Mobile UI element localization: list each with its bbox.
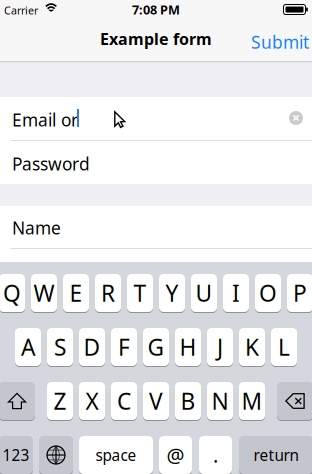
button[interactable]: B [175,382,201,421]
staticText: Password [12,152,90,176]
button[interactable]: D [79,328,105,367]
staticText: return [253,445,298,465]
staticText: K [245,332,259,362]
button[interactable]: Submit [237,27,309,57]
staticText: O [259,278,277,308]
button[interactable]: C [111,382,137,421]
button[interactable]: M [239,382,265,421]
staticText: F [118,332,130,362]
button[interactable]: Z [47,382,73,421]
button[interactable]: J [207,328,233,367]
staticText: A [21,332,35,362]
button[interactable]: H [175,328,201,367]
staticText: space [95,445,136,465]
staticText: E [69,278,82,308]
staticText: or [61,108,78,132]
button[interactable]: R [95,274,121,313]
staticText: Q [3,278,21,308]
staticText: M [241,386,262,416]
staticText: L [278,332,290,362]
button[interactable]: @ [159,436,192,474]
staticText: W [33,278,54,308]
button[interactable]: G [143,328,169,367]
staticText: Submit [251,30,309,54]
staticText: C [117,386,131,416]
button[interactable]: Clear text [289,111,303,125]
staticText: H [179,332,196,362]
button[interactable]: Y [159,274,185,313]
staticText: Name [12,216,61,240]
button[interactable]: A [15,328,41,367]
staticText: B [180,386,195,416]
button[interactable]: Q [0,274,25,313]
button[interactable]: P [287,274,312,313]
button[interactable]: X [79,382,105,421]
staticText: Z [53,386,66,416]
button[interactable]: Next keyboard [39,436,73,474]
button[interactable]: S [47,328,73,367]
button[interactable]: N [207,382,233,421]
button[interactable]: W [31,274,57,313]
staticText: Y [165,278,178,308]
staticText: Example form [100,28,212,50]
button[interactable]: 123 [0,436,33,474]
button[interactable]: Shift [0,382,35,421]
button[interactable]: Delete [277,382,312,421]
button[interactable]: V [143,382,169,421]
staticText: 123 [2,445,29,465]
button[interactable]: U [191,274,217,313]
staticText: U [195,278,212,308]
staticText: T [133,278,146,308]
button[interactable]: . [199,436,232,474]
staticText: P [293,278,307,308]
staticText: R [101,278,115,308]
button[interactable]: L [271,328,297,367]
button[interactable]: E [63,274,89,313]
staticText: 7:08 PM [132,1,180,18]
staticText: Email [12,108,56,132]
button[interactable]: O [255,274,281,313]
staticText: . [213,441,218,469]
button[interactable]: F [111,328,137,367]
staticText: N [211,386,228,416]
staticText: Carrier [4,3,38,17]
button[interactable]: return [239,436,312,474]
staticText: @ [166,441,184,469]
staticText: I [232,278,240,308]
button[interactable]: T [127,274,153,313]
button[interactable]: I [223,274,249,313]
staticText: V [149,386,163,416]
button[interactable]: K [239,328,265,367]
staticText: J [217,332,223,362]
staticText: D [83,332,100,362]
staticText: S [54,332,66,362]
staticText: G [147,332,164,362]
button[interactable]: space [79,436,153,474]
staticText: X [85,386,98,416]
